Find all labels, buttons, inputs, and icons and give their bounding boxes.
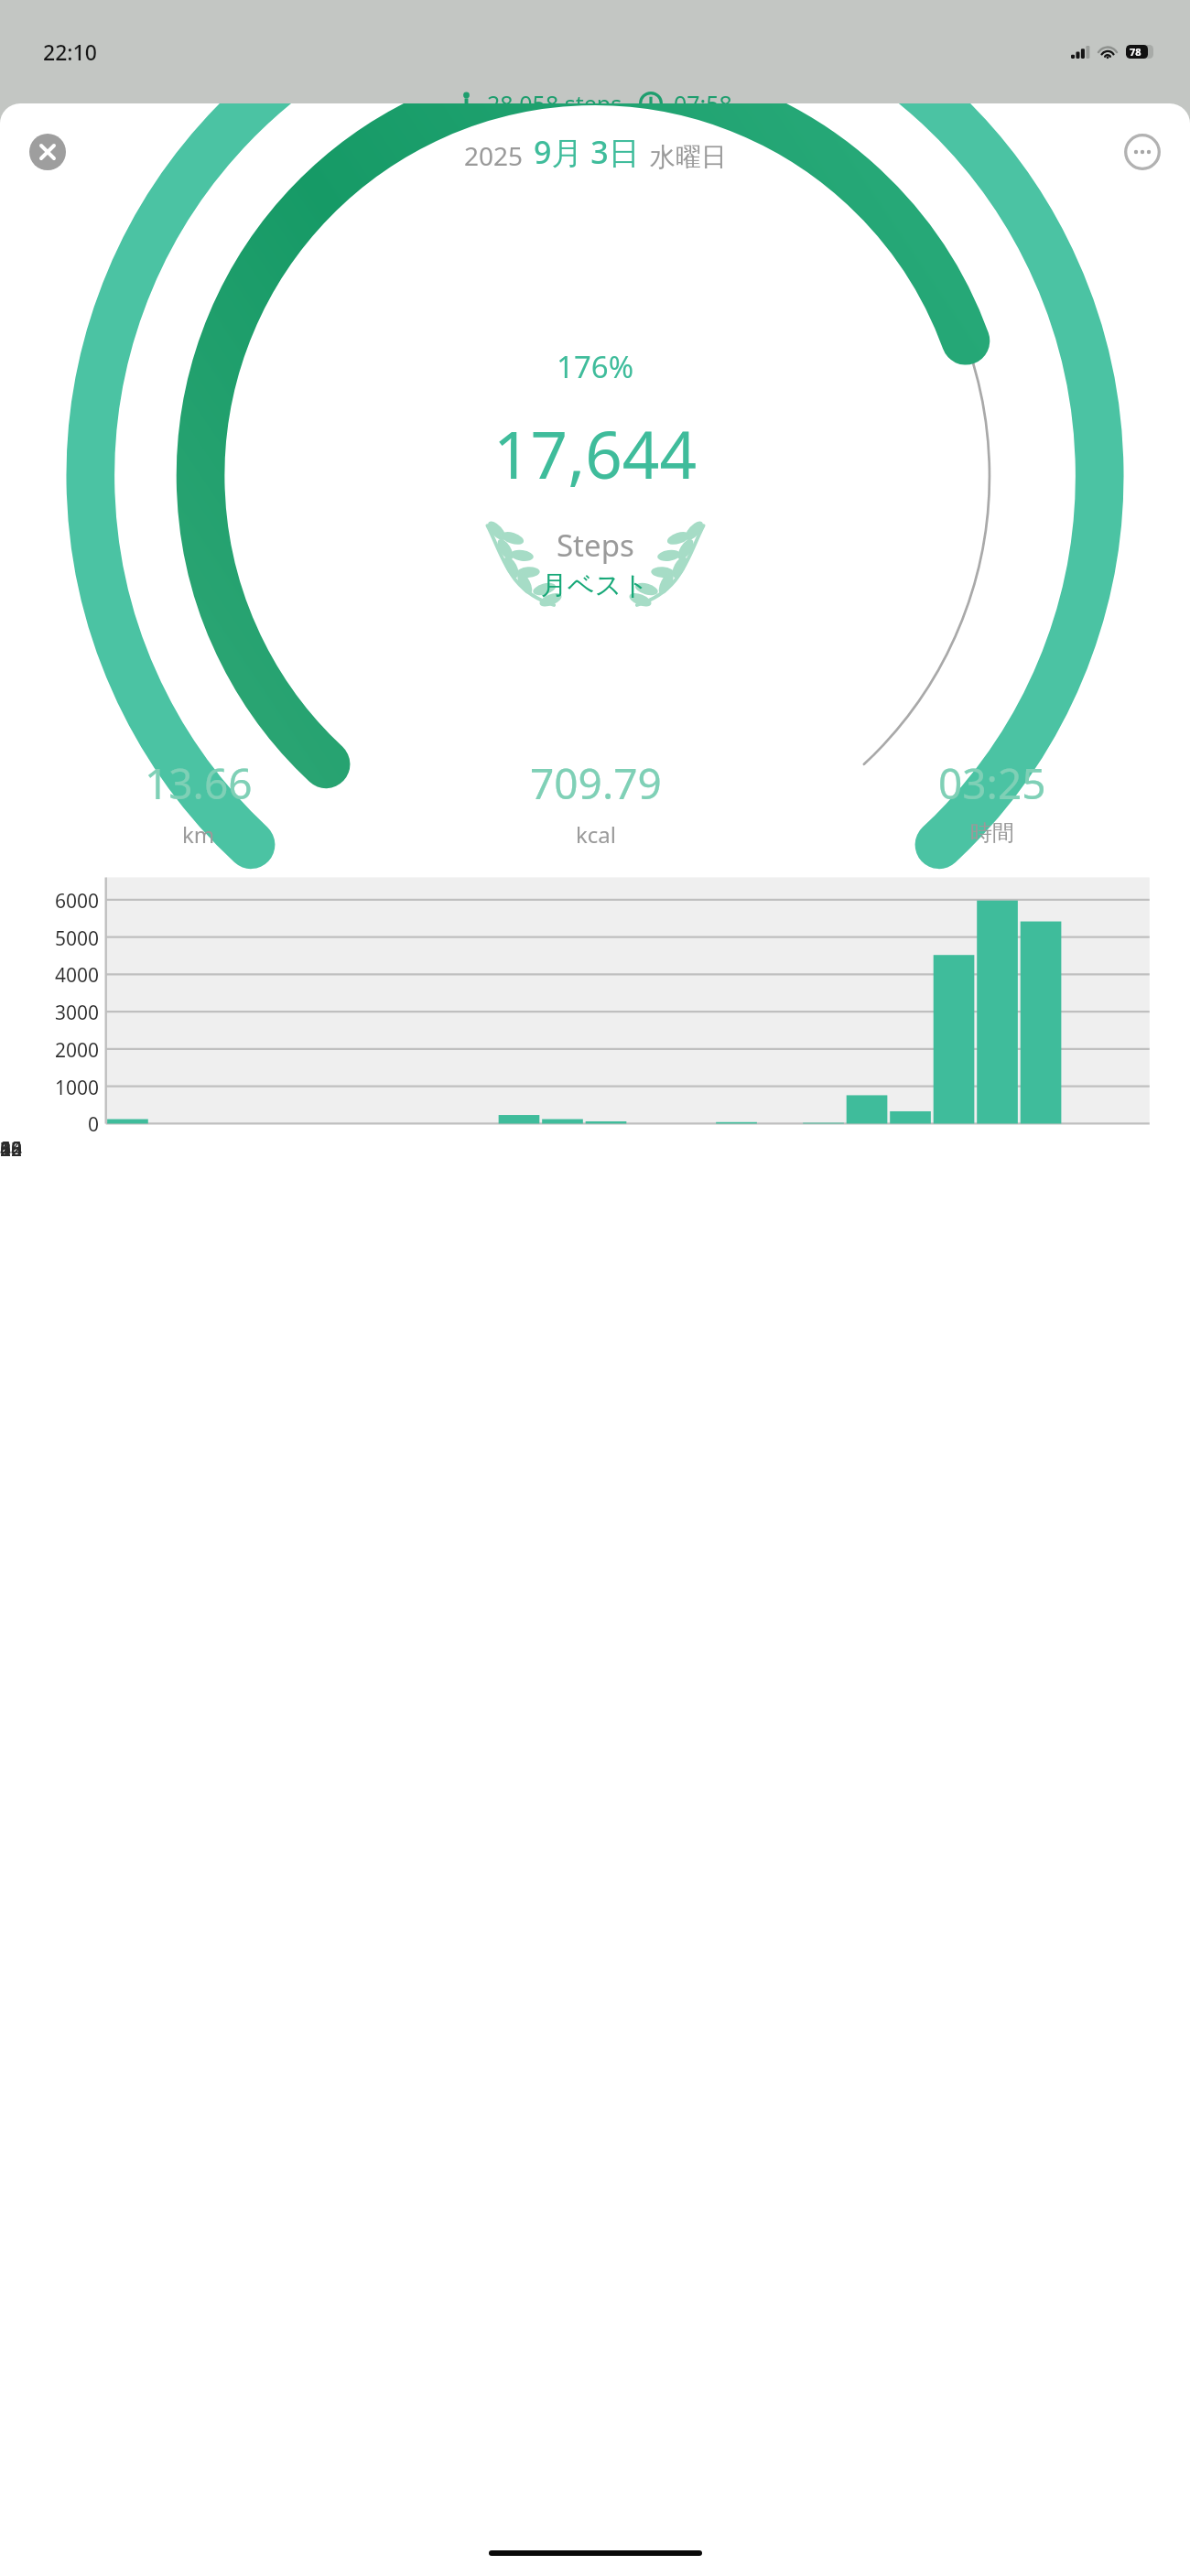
staticText: 6 (0, 1136, 1190, 1163)
staticText: 時間 (970, 819, 1014, 847)
staticText: 78 (1130, 45, 1141, 59)
staticText: 1000 (0, 1075, 99, 1101)
staticText: 709.79 (530, 754, 662, 812)
staticText: 16 (0, 1136, 1190, 1163)
staticText: 18 (0, 1136, 1190, 1163)
staticText: 17,644 (493, 409, 698, 498)
staticText: 22:10 (43, 38, 97, 66)
staticText: 2000 (0, 1037, 99, 1064)
staticText: 13.66 (145, 754, 253, 812)
staticText: 12 (0, 1136, 1190, 1163)
button[interactable]: 709.79 (397, 754, 794, 850)
staticText: 月ベスト (541, 568, 650, 602)
staticText: 0 (0, 1136, 1190, 1163)
staticText: kcal (576, 819, 616, 850)
button[interactable]: 03:25 (794, 754, 1190, 847)
staticText: 3000 (0, 1000, 99, 1026)
staticText: 8 (0, 1136, 1190, 1163)
staticText: 176% (557, 346, 634, 387)
staticText: 9月 3日 (534, 131, 640, 173)
staticText: 0 (0, 1111, 99, 1138)
staticText: 2 (0, 1136, 1190, 1163)
staticText: 10 (0, 1136, 1190, 1163)
button[interactable]: Close (29, 134, 66, 170)
staticText: 28,058 steps (487, 88, 622, 119)
button[interactable]: 13.66 (0, 754, 397, 850)
staticText: 5000 (0, 925, 99, 952)
button[interactable]: More options (1124, 134, 1161, 170)
staticText: 14 (0, 1136, 1190, 1163)
staticText: 20 (0, 1136, 1190, 1163)
staticText: Steps (557, 525, 634, 566)
staticText: 07:58 (674, 88, 732, 119)
staticText: 4000 (0, 962, 99, 989)
staticText: 03:25 (938, 754, 1046, 812)
staticText: 6000 (0, 888, 99, 915)
staticText: 22 (0, 1136, 1190, 1163)
staticText: 4 (0, 1136, 1190, 1163)
staticText: 水曜日 (650, 141, 727, 173)
staticText: km (182, 819, 215, 850)
staticText: 2025 (464, 138, 524, 173)
